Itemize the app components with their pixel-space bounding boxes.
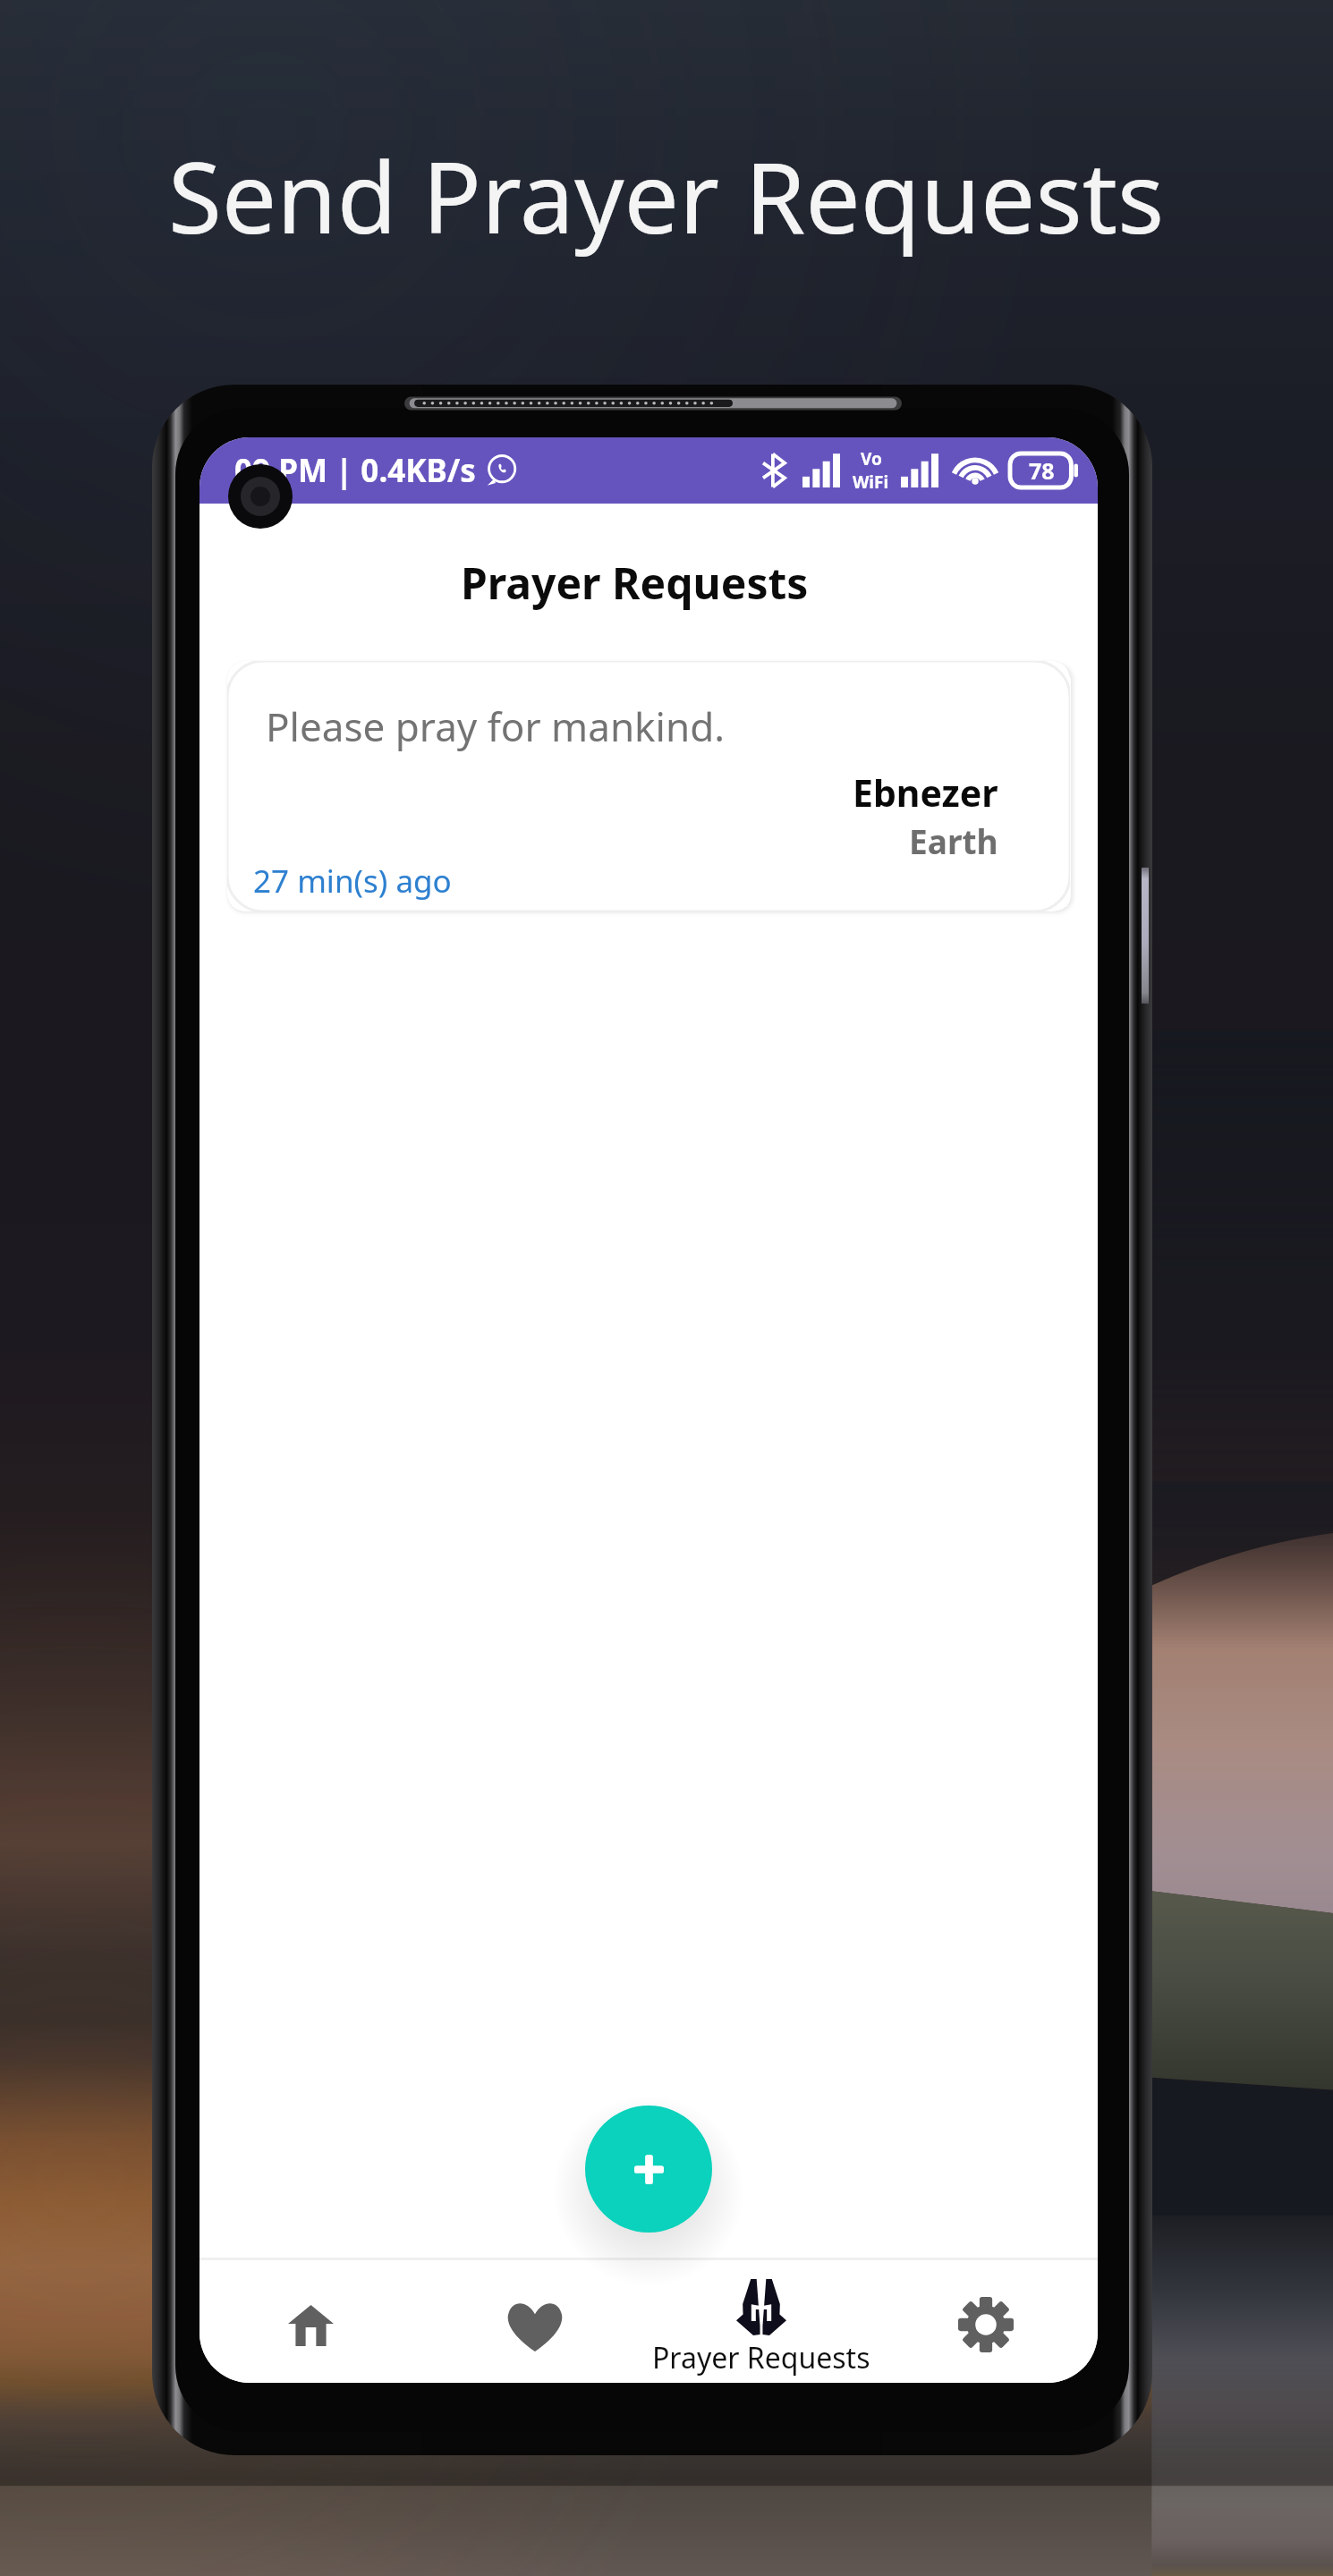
button[interactable]: Home: [257, 2258, 364, 2383]
staticText: Prayer Requests: [652, 2338, 870, 2377]
staticText: 78: [1029, 455, 1055, 486]
button[interactable]: Please pray for mankind.: [227, 661, 1070, 911]
staticText: WiFi: [853, 470, 889, 494]
staticText: Earth: [909, 818, 998, 863]
staticText: Please pray for mankind.: [266, 699, 725, 753]
button[interactable]: Prayer Requests: [605, 2258, 918, 2383]
staticText: Vo: [861, 447, 882, 470]
button[interactable]: Favourites: [481, 2258, 589, 2383]
staticText: Send Prayer Requests: [168, 129, 1165, 261]
staticText: 27 min(s) ago: [253, 860, 452, 902]
staticText: Ebnezer: [853, 767, 998, 818]
button[interactable]: Add prayer request: [585, 2106, 712, 2233]
button[interactable]: Settings: [932, 2258, 1040, 2383]
staticText: Prayer Requests: [461, 554, 809, 612]
staticText: 09 PM | 0.4KB/s: [234, 449, 476, 492]
